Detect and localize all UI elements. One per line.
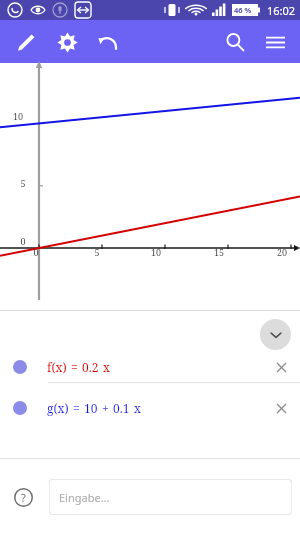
staticText: 0 — [26, 246, 46, 258]
staticText: 0.1 — [113, 400, 130, 416]
button[interactable]: Toggle visibility — [0, 393, 300, 423]
button[interactable]: Help — [7, 481, 39, 513]
staticText: 0.2 — [82, 359, 99, 375]
staticText: g(x) — [47, 400, 69, 416]
staticText: 20 — [272, 246, 292, 258]
staticText: 5 — [87, 246, 107, 258]
button[interactable]: Settings — [50, 25, 84, 59]
button[interactable]: Undo — [91, 25, 125, 59]
staticText: 46 % — [234, 5, 252, 15]
staticText: + — [102, 400, 109, 416]
button[interactable]: Edit — [9, 25, 43, 59]
staticText: 10 — [8, 110, 28, 122]
staticText: f(x) — [47, 359, 67, 375]
staticText: Eingabe... — [59, 490, 110, 505]
staticText: 15 — [209, 246, 229, 258]
staticText: ? — [21, 490, 26, 505]
button[interactable]: Search — [218, 25, 252, 59]
staticText: = — [71, 359, 78, 375]
staticText: 5 — [13, 177, 33, 189]
button[interactable]: Delete — [268, 395, 294, 421]
staticText: 16:02 — [267, 3, 296, 18]
button[interactable]: Delete — [268, 354, 294, 380]
button[interactable]: Toggle visibility — [13, 401, 27, 415]
staticText: x — [103, 359, 110, 375]
staticText: 10 — [146, 246, 166, 258]
button[interactable]: Collapse — [260, 319, 291, 350]
button[interactable]: Toggle visibility — [13, 360, 27, 374]
staticText: = — [73, 400, 80, 416]
button[interactable]: Toggle visibility — [0, 352, 300, 382]
button[interactable]: Eingabe... — [49, 479, 292, 515]
staticText: 10 — [84, 400, 98, 416]
staticText: 0 — [13, 235, 33, 247]
staticText: x — [134, 400, 141, 416]
button[interactable]: Menu — [258, 25, 292, 59]
